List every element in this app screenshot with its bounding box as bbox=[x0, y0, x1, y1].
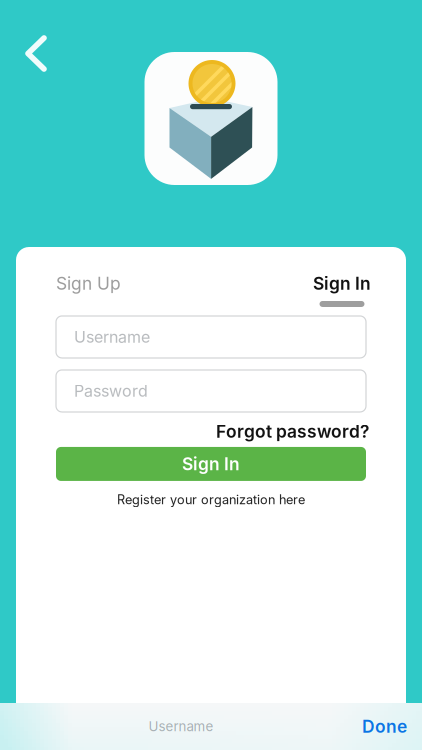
button[interactable]: Back bbox=[0, 0, 47, 72]
button[interactable]: Sign In bbox=[56, 447, 366, 481]
staticText: Username bbox=[74, 327, 150, 347]
staticText: Forgot password? bbox=[216, 421, 369, 442]
staticText: Sign In bbox=[182, 453, 240, 474]
staticText: Done bbox=[362, 716, 407, 737]
button[interactable]: Done bbox=[362, 716, 422, 737]
button[interactable]: Register your organization here bbox=[117, 492, 305, 507]
staticText: Username bbox=[148, 718, 213, 734]
button[interactable]: Sign In bbox=[313, 273, 371, 307]
button[interactable]: Forgot password? bbox=[216, 421, 369, 442]
staticText: Password bbox=[74, 381, 148, 401]
button[interactable]: Sign Up bbox=[56, 273, 121, 294]
staticText: Sign In bbox=[313, 273, 371, 294]
staticText: Sign Up bbox=[56, 273, 121, 294]
staticText: Register your organization here bbox=[117, 492, 305, 507]
